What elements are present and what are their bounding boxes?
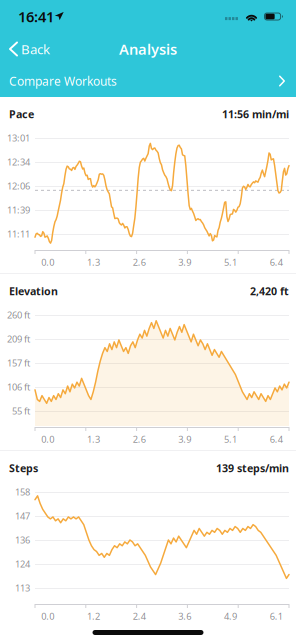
staticText: 260 ft — [7, 309, 30, 321]
staticText: Pace — [9, 107, 34, 121]
staticText: 136 — [15, 534, 30, 546]
staticText: 209 ft — [7, 333, 30, 345]
staticText: 4.9 — [224, 610, 237, 622]
staticText: 106 ft — [7, 381, 30, 393]
staticText: 11:56 min/mi — [222, 107, 289, 121]
staticText: 3.6 — [178, 610, 191, 622]
button[interactable]: Compare Workouts — [0, 65, 296, 97]
staticText: 0.0 — [41, 256, 54, 268]
staticText: 158 — [15, 486, 30, 498]
staticText: 139 steps/min — [216, 461, 289, 475]
staticText: 1.3 — [87, 256, 100, 268]
staticText: Analysis — [119, 39, 177, 59]
staticText: 11:39 — [7, 204, 30, 216]
staticText: 1.3 — [87, 433, 100, 445]
staticText: 2.6 — [133, 256, 146, 268]
staticText: 12:06 — [7, 180, 30, 192]
staticText: 6.4 — [270, 433, 283, 445]
staticText: 13:01 — [7, 132, 30, 144]
staticText: 12:34 — [7, 156, 30, 168]
staticText: 3.9 — [178, 256, 191, 268]
staticText: 3.9 — [178, 433, 191, 445]
staticText: Elevation — [9, 284, 58, 298]
staticText: 0.0 — [41, 610, 54, 622]
staticText: 2.6 — [133, 433, 146, 445]
staticText: 16:41 — [18, 6, 54, 26]
staticText: 157 ft — [7, 357, 30, 369]
staticText: Steps — [9, 461, 38, 475]
staticText: 5.1 — [224, 433, 237, 445]
staticText: 1.2 — [87, 610, 100, 622]
staticText: Compare Workouts — [9, 73, 117, 89]
staticText: 6.4 — [270, 256, 283, 268]
button[interactable]: Back — [0, 33, 60, 65]
staticText: 0.0 — [41, 433, 54, 445]
staticText: 113 — [15, 582, 30, 594]
staticText: Back — [21, 40, 50, 58]
staticText: 124 — [15, 558, 30, 570]
staticText: 6.1 — [270, 610, 283, 622]
staticText: 55 ft — [12, 405, 30, 417]
staticText: 147 — [15, 510, 30, 522]
staticText: 5.1 — [224, 256, 237, 268]
staticText: 2.4 — [133, 610, 146, 622]
staticText: 11:11 — [7, 228, 30, 240]
staticText: 2,420 ft — [250, 284, 289, 298]
